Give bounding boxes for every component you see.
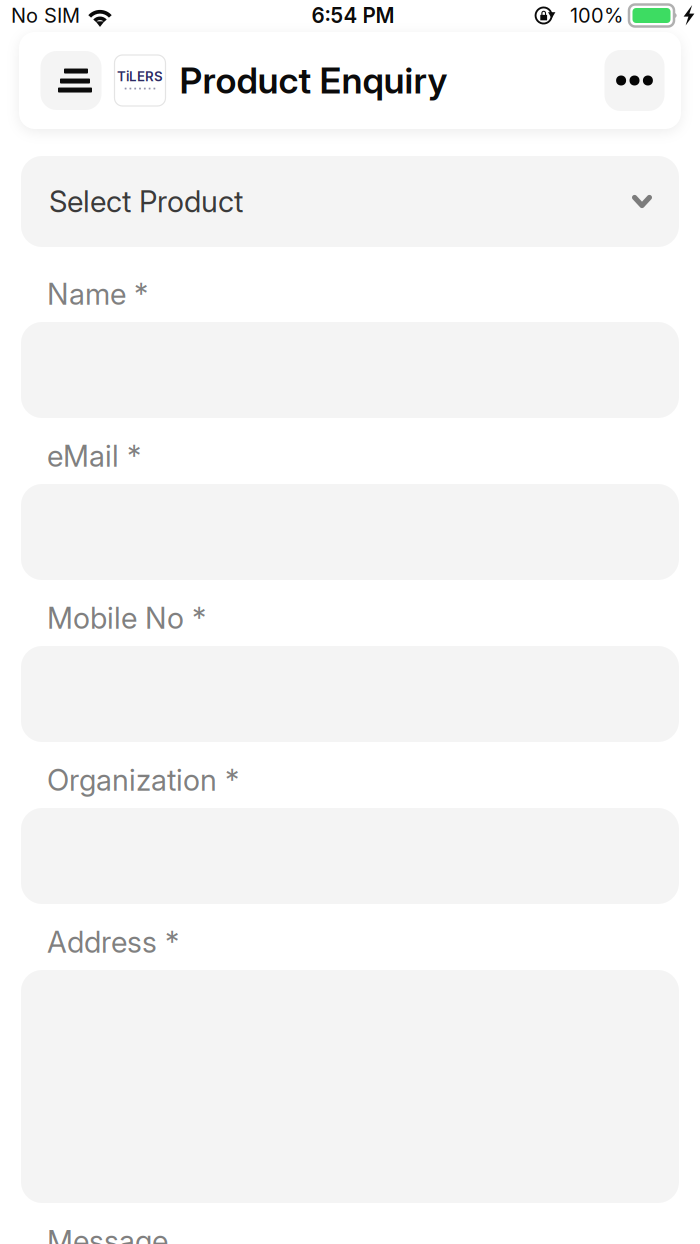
staticText: Address * [47, 924, 179, 960]
staticText: Select Product [49, 184, 243, 219]
staticText: Message [47, 1223, 168, 1244]
staticText: Organization * [47, 762, 239, 798]
staticText: 100% [570, 3, 623, 28]
staticText: 6:54 PM [311, 3, 394, 28]
staticText: Product Enquiry [179, 59, 447, 102]
button[interactable]: More options [604, 50, 664, 111]
staticText: eMail * [47, 438, 141, 474]
staticText: Mobile No * [47, 600, 206, 636]
staticText: No SIM [11, 3, 80, 28]
button[interactable]: Menu [40, 51, 101, 110]
button[interactable]: Select Product [21, 156, 679, 247]
staticText: TiLERS [117, 68, 163, 84]
staticText: Name * [47, 276, 148, 312]
